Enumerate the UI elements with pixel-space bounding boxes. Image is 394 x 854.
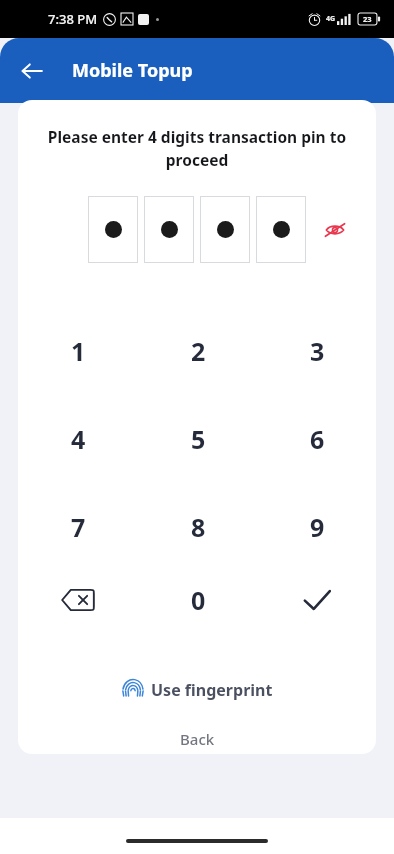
button[interactable]: Confirm xyxy=(290,573,344,627)
staticText: 6 xyxy=(310,422,325,456)
button[interactable]: Back xyxy=(12,51,52,91)
button[interactable]: 5 xyxy=(170,411,226,467)
staticText: 7:38 PM xyxy=(48,10,98,28)
button[interactable]: 7 xyxy=(50,499,106,555)
button[interactable]: 1 xyxy=(50,323,106,379)
staticText: 3 xyxy=(310,334,325,368)
staticText: 4G xyxy=(326,14,336,24)
staticText: 9 xyxy=(310,510,325,544)
button[interactable]: PIN digit 3 xyxy=(200,196,250,263)
staticText: 5 xyxy=(191,422,206,456)
button[interactable]: 8 xyxy=(170,499,226,555)
button[interactable]: 3 xyxy=(289,323,345,379)
staticText: 23 xyxy=(363,14,372,24)
staticText: 8 xyxy=(191,510,206,544)
staticText: 4 xyxy=(71,422,86,456)
button[interactable]: Hide PIN xyxy=(318,213,352,247)
button[interactable]: 4 xyxy=(50,411,106,467)
staticText: Mobile Topup xyxy=(72,58,193,83)
staticText: Use fingerprint xyxy=(151,679,273,701)
staticText: 1 xyxy=(71,334,86,368)
staticText: 0 xyxy=(191,583,206,617)
staticText: Please enter 4 digits transaction pin to… xyxy=(44,126,350,171)
button[interactable]: 6 xyxy=(289,411,345,467)
button[interactable]: PIN digit 4 xyxy=(256,196,306,263)
button[interactable]: 9 xyxy=(289,499,345,555)
button[interactable]: PIN digit 2 xyxy=(144,196,194,263)
staticText: Back xyxy=(180,729,215,749)
button[interactable]: Back xyxy=(164,724,231,754)
button[interactable]: 2 xyxy=(170,323,226,379)
button[interactable]: 0 xyxy=(171,573,225,627)
button[interactable]: Backspace xyxy=(51,573,105,627)
staticText: 2 xyxy=(191,334,206,368)
button[interactable]: PIN digit 1 xyxy=(88,196,138,263)
button[interactable]: Use fingerprint xyxy=(114,675,281,705)
staticText: 7 xyxy=(71,510,86,544)
